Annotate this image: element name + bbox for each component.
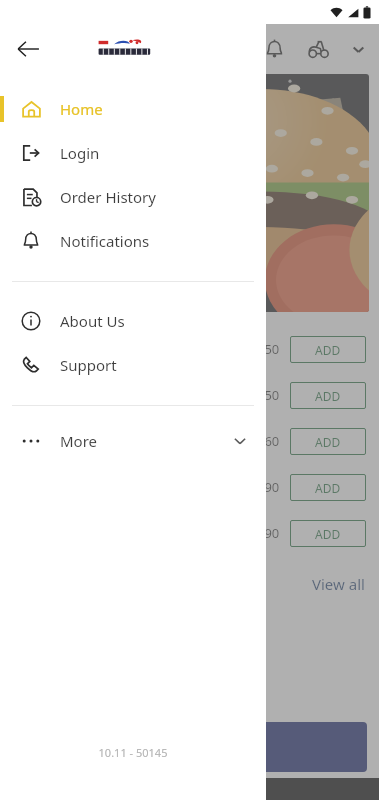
staticText: Notifications — [60, 231, 150, 251]
button[interactable] — [12, 722, 367, 772]
staticText: View all — [312, 574, 365, 594]
staticText: ADD — [315, 434, 341, 450]
button[interactable]: Delivery mode — [303, 34, 333, 64]
button[interactable]: 360 — [0, 418, 379, 464]
staticText: Support — [60, 355, 117, 375]
button[interactable]: ADD — [290, 336, 366, 363]
staticText: Home — [60, 99, 103, 119]
button[interactable]: 190 — [0, 510, 379, 556]
button[interactable] — [0, 0, 379, 800]
staticText: About Us — [60, 311, 125, 331]
button[interactable] — [10, 74, 369, 312]
button[interactable]: About Us — [0, 299, 266, 343]
button[interactable]: Support — [0, 343, 266, 387]
staticText: Order History — [60, 187, 156, 207]
button[interactable]: Expand — [347, 38, 369, 60]
button[interactable]: Login — [0, 131, 266, 175]
staticText: More — [60, 431, 98, 451]
button[interactable]: 350 — [0, 326, 379, 372]
staticText: 350 — [257, 340, 280, 358]
button[interactable]: ADD — [290, 428, 366, 455]
button[interactable]: ADD — [290, 520, 366, 547]
staticText: ADD — [315, 342, 341, 358]
button[interactable]: Back — [8, 29, 48, 69]
staticText: ADD — [315, 526, 341, 542]
staticText: ADD — [315, 480, 341, 496]
staticText: 10.11 - 50145 — [0, 745, 266, 760]
button[interactable]: More — [0, 419, 266, 463]
staticText: ADD — [315, 388, 341, 404]
staticText: 190 — [257, 524, 280, 542]
staticText: Login — [60, 143, 100, 163]
button[interactable]: ADD — [290, 474, 366, 501]
button[interactable]: Notifications — [0, 219, 266, 263]
button[interactable]: Order History — [0, 175, 266, 219]
button[interactable]: 290 — [0, 464, 379, 510]
button[interactable]: 250 — [0, 372, 379, 418]
staticText: 290 — [257, 478, 280, 496]
staticText: 360 — [257, 432, 280, 450]
button[interactable]: Home — [0, 87, 266, 131]
button[interactable]: Notifications — [259, 34, 289, 64]
button[interactable]: View all — [312, 574, 365, 594]
staticText: 250 — [257, 386, 280, 404]
button[interactable]: ADD — [290, 382, 366, 409]
